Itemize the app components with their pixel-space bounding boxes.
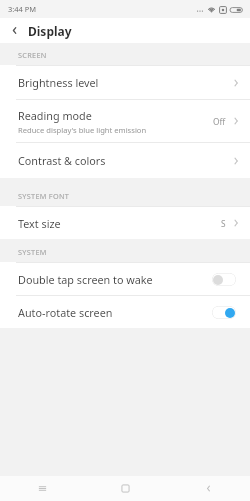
button[interactable]: Reading mode [0, 100, 250, 142]
staticText: Double tap screen to wake [18, 272, 212, 287]
staticText: S [221, 218, 226, 229]
button[interactable]: Text size [0, 207, 250, 239]
staticText: Contrast & colors [18, 153, 106, 168]
button[interactable]: Auto-rotate screen [0, 296, 250, 328]
staticText: Reading mode [18, 108, 92, 123]
staticText: Auto-rotate screen [18, 305, 212, 320]
staticText: SCREEN [18, 50, 47, 60]
staticText: SYSTEM [18, 247, 47, 257]
staticText: SYSTEM FONT [18, 191, 70, 201]
button[interactable]: Recent apps [0, 476, 84, 501]
button[interactable]: Contrast & colors [0, 143, 250, 178]
staticText: Display [28, 23, 72, 39]
button[interactable]: Back [0, 18, 28, 43]
staticText: Text size [18, 216, 61, 231]
staticText: Brightness level [18, 75, 99, 90]
staticText: 3:44 PM [8, 4, 37, 14]
staticText: Reduce display's blue light emission [18, 125, 147, 135]
button[interactable]: Home [84, 476, 167, 501]
button[interactable]: Brightness level [0, 66, 250, 99]
button[interactable]: Double tap screen to wake [0, 263, 250, 295]
staticText: Off [213, 116, 226, 127]
